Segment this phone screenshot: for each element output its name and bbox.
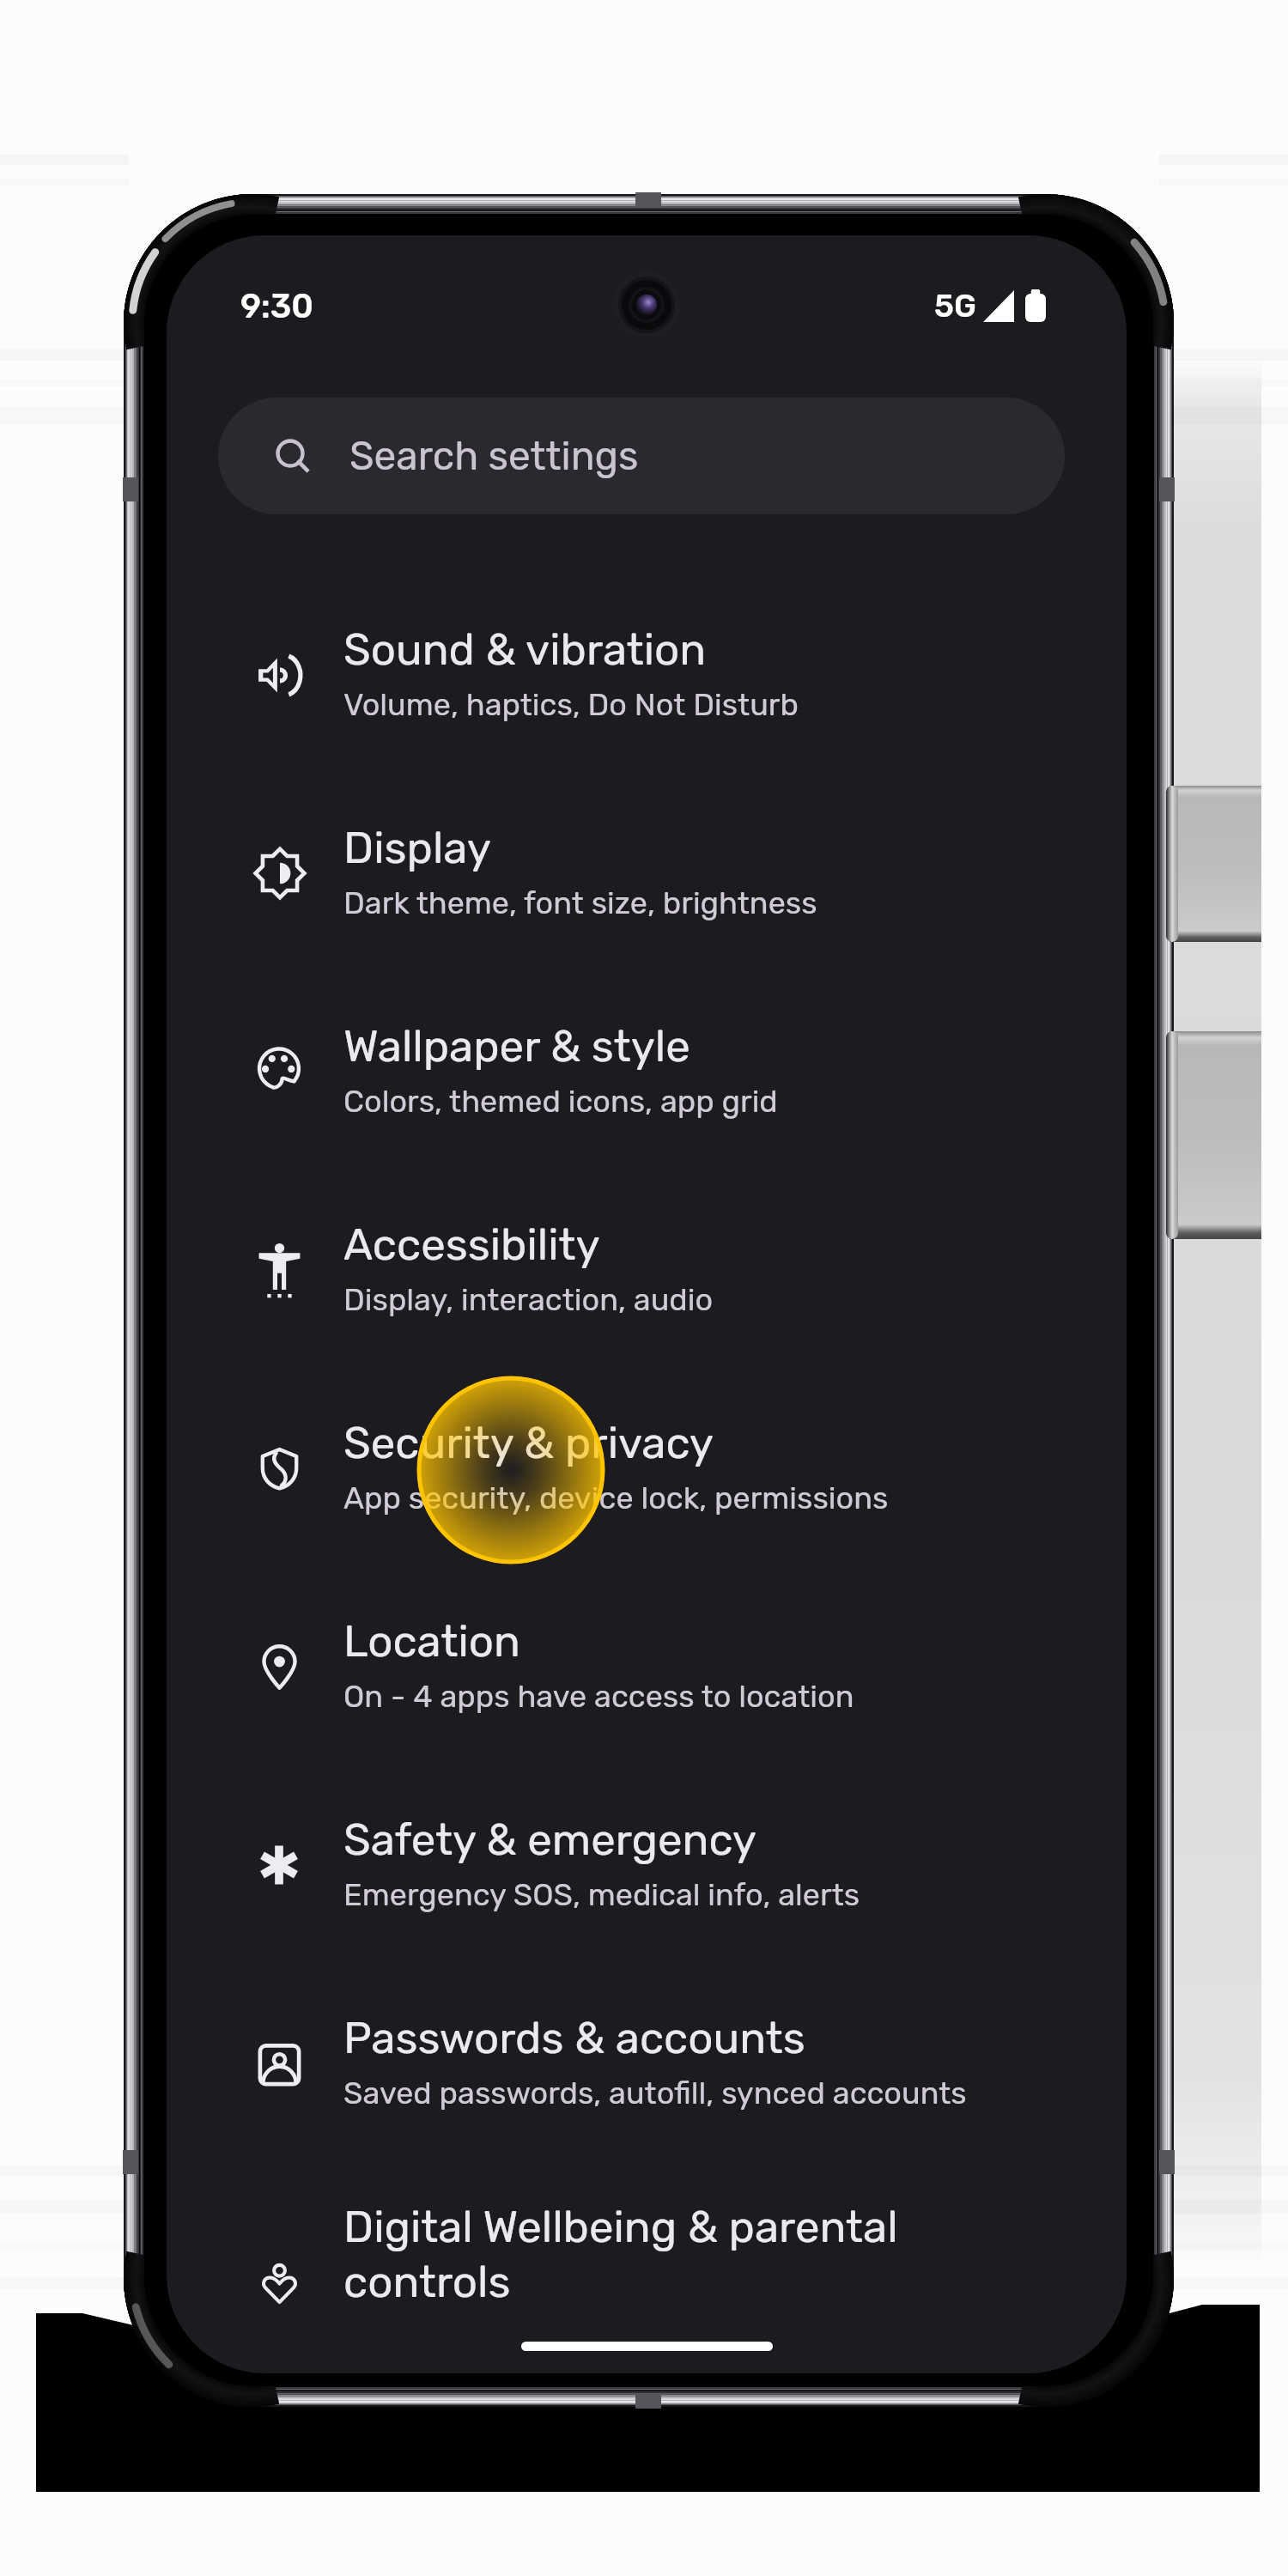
button[interactable]: Sound & vibration: [167, 576, 1127, 775]
button[interactable]: Passwords & accounts: [167, 1965, 1127, 2163]
other: Search: [270, 434, 314, 478]
staticText: Safety & emergency: [343, 1814, 756, 1865]
button[interactable]: Display: [167, 775, 1127, 973]
staticText: Search settings: [349, 433, 639, 480]
staticText: Wallpaper & style: [343, 1020, 690, 1072]
staticText: Saved passwords, autofill, synced accoun…: [343, 2075, 967, 2111]
staticText: 5G: [934, 287, 976, 325]
button[interactable]: Accessibility: [167, 1171, 1127, 1370]
button[interactable]: Digital Wellbeing & parental controls: [167, 2160, 1127, 2353]
staticText: Location: [343, 1615, 520, 1667]
staticText: Dark theme, font size, brightness: [343, 884, 817, 921]
staticText: Digital Wellbeing & parental controls: [343, 2201, 898, 2308]
staticText: Colors, themed icons, app grid: [343, 1083, 778, 1120]
button[interactable]: Safety & emergency: [167, 1766, 1127, 1965]
button[interactable]: Wallpaper & style: [167, 973, 1127, 1171]
staticText: Display, interaction, audio: [343, 1281, 714, 1318]
button[interactable]: Security & privacy: [167, 1370, 1127, 1568]
staticText: Sound & vibration: [343, 623, 707, 675]
staticText: Accessibility: [343, 1218, 600, 1270]
staticText: 9:30: [240, 287, 313, 326]
staticText: Display: [343, 822, 491, 873]
staticText: Security & privacy: [343, 1417, 714, 1468]
button[interactable]: Location: [167, 1568, 1127, 1766]
staticText: Passwords & accounts: [343, 2012, 805, 2063]
staticText: On - 4 apps have access to location: [343, 1678, 854, 1715]
button[interactable]: Search: [218, 398, 1065, 514]
staticText: Volume, haptics, Do Not Disturb: [343, 686, 799, 723]
staticText: Emergency SOS, medical info, alerts: [343, 1876, 860, 1913]
staticText: App security, device lock, permissions: [343, 1479, 889, 1516]
